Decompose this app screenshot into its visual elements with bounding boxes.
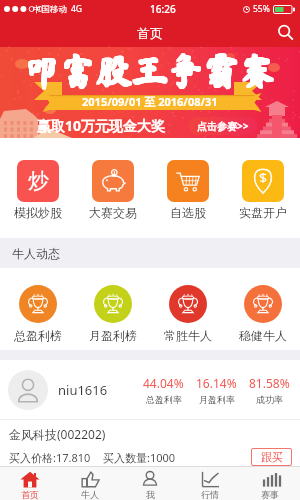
staticText: 叩富股王争霸赛	[24, 51, 277, 87]
button[interactable]: 首页	[0, 468, 60, 500]
button[interactable]: 牛人	[60, 468, 120, 500]
staticText: 炒	[28, 168, 49, 194]
staticText: 首页	[21, 489, 39, 500]
staticText: 实盘开户	[239, 205, 287, 220]
staticText: 买入价格:17.810	[9, 450, 91, 465]
staticText: 月盈利榜	[89, 328, 137, 343]
staticText: 2015/09/01 至 2016/08/31	[82, 94, 218, 109]
staticText: 叩富股王争霸赛	[25, 52, 278, 88]
staticText: 16:26	[150, 2, 176, 16]
staticText: 叩富股王争霸赛	[23, 51, 276, 87]
staticText: 成功率	[256, 394, 283, 405]
staticText: 叩富股王争霸赛	[23, 53, 276, 89]
staticText: 赛事	[261, 489, 279, 500]
staticText: niu1616	[58, 381, 108, 399]
staticText: 月盈利率	[199, 394, 235, 405]
button[interactable]: 常胜牛人	[150, 268, 225, 343]
staticText: 81.58%	[249, 375, 290, 391]
staticText: 总盈利率	[146, 394, 182, 405]
staticText: 跟买	[261, 450, 283, 464]
button[interactable]: 总盈利榜	[0, 268, 75, 343]
staticText: 常胜牛人	[164, 328, 212, 343]
button[interactable]: 赛事	[240, 468, 300, 500]
staticText: 总盈利榜	[14, 328, 62, 343]
button[interactable]: 跟买	[251, 448, 292, 466]
staticText: 我	[146, 489, 155, 500]
staticText: 首页	[137, 25, 163, 41]
button[interactable]: 自选股	[150, 138, 225, 220]
staticText: 大赛交易	[89, 205, 137, 220]
button[interactable]: 点击参赛>>	[189, 117, 257, 135]
staticText: 叩富股王争霸赛	[25, 53, 278, 89]
staticText: 叩富股王争霸赛	[23, 52, 276, 88]
button[interactable]: 大赛交易	[75, 138, 150, 220]
button[interactable]: 月盈利榜	[75, 268, 150, 343]
button[interactable]: 我	[120, 468, 180, 500]
staticText: 叩富股王争霸赛	[25, 51, 278, 87]
staticText: 中国移动	[33, 4, 67, 15]
staticText: 55%	[253, 3, 270, 15]
staticText: 自选股	[170, 205, 206, 220]
staticText: 金风科技(002202)	[9, 426, 106, 442]
staticText: 稳健牛人	[239, 328, 287, 343]
staticText: 44.04%	[143, 375, 184, 391]
staticText: 牛人	[81, 489, 99, 500]
button[interactable]: 实盘开户	[225, 138, 300, 220]
staticText: 行情	[201, 489, 219, 500]
button[interactable]: 稳健牛人	[225, 268, 300, 343]
staticText: 4G	[71, 3, 83, 15]
staticText: 赢取10万元现金大奖	[37, 116, 166, 135]
staticText: 点击参赛>>	[197, 119, 249, 133]
button[interactable]: 炒	[0, 138, 75, 220]
staticText: 牛人动态	[12, 246, 60, 261]
staticText: 叩富股王争霸赛	[24, 52, 277, 88]
button[interactable]: Search	[271, 18, 300, 47]
staticText: 16.14%	[196, 375, 237, 391]
button[interactable]: 行情	[180, 468, 240, 500]
staticText: 模拟炒股	[14, 205, 62, 220]
staticText: 买入数量:1000	[103, 450, 176, 465]
staticText: 叩富股王争霸赛	[24, 53, 277, 89]
